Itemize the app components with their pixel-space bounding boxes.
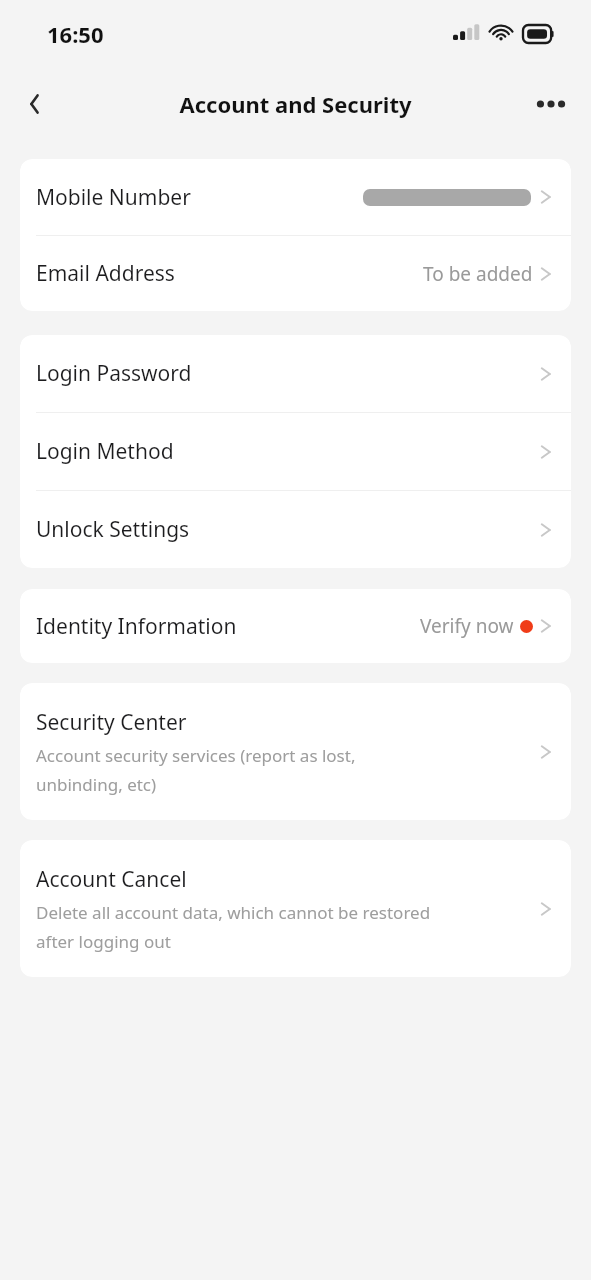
staticText: To be added [423,261,533,287]
staticText: Unlock Settings [36,515,190,544]
button[interactable]: Mobile Number [20,159,571,235]
staticText: Account Cancel [36,865,187,894]
button[interactable]: Email Address [20,236,571,311]
button[interactable]: Login Password [20,335,571,412]
staticText: Security Center [36,708,187,737]
staticText: Verify now [420,613,514,639]
button[interactable]: Back [14,82,58,126]
staticText: 16:50 [47,19,104,49]
staticText: Identity Information [36,612,237,641]
button[interactable]: Security Center [20,683,571,820]
button[interactable]: Identity Information [20,589,571,663]
staticText: Email Address [36,259,175,288]
staticText: Login Method [36,437,174,466]
button[interactable]: More options [529,82,573,126]
button[interactable]: Login Method [20,413,571,490]
staticText: Account and Security [179,89,412,119]
staticText: Login Password [36,359,192,388]
staticText: Mobile Number [36,183,191,212]
staticText: Delete all account data, which cannot be… [36,901,431,953]
button[interactable]: Unlock Settings [20,491,571,568]
staticText: Account security services (report as los… [36,744,356,796]
button[interactable]: Account Cancel [20,840,571,977]
